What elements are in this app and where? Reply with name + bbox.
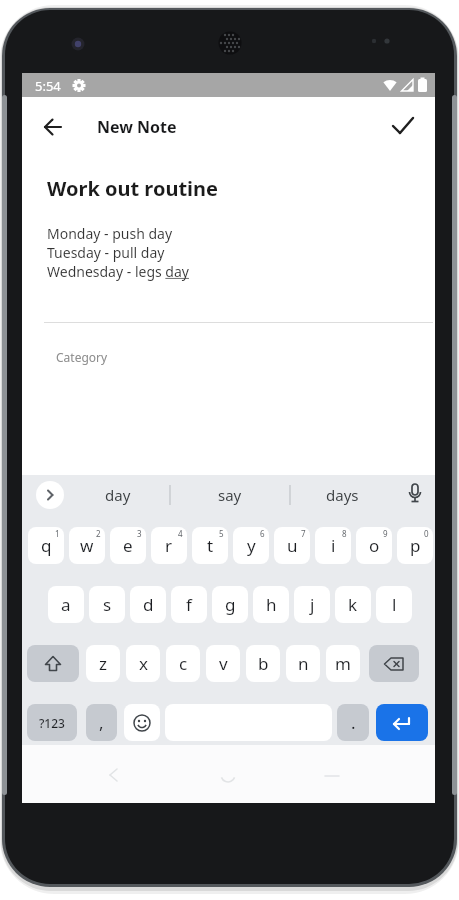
button[interactable]: a	[48, 586, 84, 623]
button[interactable]: c	[166, 645, 200, 682]
button[interactable]: j	[294, 586, 330, 623]
button[interactable]: m	[326, 645, 360, 682]
button[interactable]: q	[28, 527, 64, 564]
staticText: h	[266, 593, 277, 616]
button[interactable]: k	[335, 586, 371, 623]
button[interactable]	[407, 483, 423, 507]
staticText: e	[123, 534, 133, 557]
staticText: s	[103, 593, 112, 616]
button[interactable]: b	[246, 645, 280, 682]
staticText: w	[80, 534, 94, 557]
staticText: y	[247, 534, 256, 557]
staticText: Wednesday - legs day	[47, 262, 189, 281]
button[interactable]: o	[356, 527, 392, 564]
staticText: 2	[96, 528, 101, 539]
button[interactable]: u	[274, 527, 310, 564]
staticText: 5:54	[35, 77, 61, 95]
button[interactable]: w	[69, 527, 105, 564]
button[interactable]: x	[126, 645, 160, 682]
staticText: j	[310, 593, 315, 616]
button[interactable]: s	[89, 586, 125, 623]
button[interactable]: e	[110, 527, 146, 564]
button[interactable]: ,	[86, 704, 117, 741]
button[interactable]	[376, 704, 428, 741]
button[interactable]: f	[171, 586, 207, 623]
staticText: t	[207, 534, 214, 557]
button[interactable]: day	[66, 475, 170, 515]
staticText: say	[218, 485, 242, 505]
button[interactable]	[27, 645, 79, 682]
staticText: k	[348, 593, 358, 616]
button[interactable]: .	[337, 704, 369, 741]
staticText: c	[179, 652, 188, 675]
staticText: i	[331, 534, 336, 557]
staticText: days	[326, 485, 359, 505]
button[interactable]: l	[376, 586, 412, 623]
staticText: r	[165, 534, 173, 557]
staticText: Monday - push day	[47, 224, 173, 243]
staticText: b	[258, 652, 269, 675]
button[interactable]	[369, 645, 419, 682]
button[interactable]: z	[86, 645, 120, 682]
button[interactable]: n	[286, 645, 320, 682]
staticText: ?123	[39, 715, 65, 731]
staticText: a	[61, 593, 71, 616]
staticText: Category	[56, 349, 108, 365]
staticText: z	[99, 652, 107, 675]
staticText: o	[369, 534, 380, 557]
button[interactable]: y	[233, 527, 269, 564]
button[interactable]: g	[212, 586, 248, 623]
button[interactable]: ?123	[27, 704, 77, 741]
button[interactable]	[36, 481, 64, 509]
staticText: v	[219, 652, 228, 675]
button[interactable]: v	[206, 645, 240, 682]
staticText: d	[143, 593, 154, 616]
staticText: p	[410, 534, 421, 557]
button[interactable]: h	[253, 586, 289, 623]
button[interactable]: d	[130, 586, 166, 623]
staticText: f	[186, 593, 192, 616]
staticText: 0	[424, 528, 429, 539]
staticText: x	[139, 652, 148, 675]
button[interactable]	[391, 115, 415, 135]
staticText: ,	[99, 711, 104, 734]
staticText: m	[335, 652, 351, 675]
staticText: 8	[342, 528, 347, 539]
staticText: n	[298, 652, 309, 675]
button[interactable]: t	[192, 527, 228, 564]
staticText: .	[351, 711, 356, 734]
button[interactable]	[124, 704, 160, 741]
staticText: 7	[301, 528, 306, 539]
button[interactable]: r	[151, 527, 187, 564]
staticText: 4	[178, 528, 183, 539]
staticText: u	[287, 534, 298, 557]
staticText: Tuesday - pull day	[47, 243, 165, 262]
staticText: Work out routine	[47, 175, 218, 202]
button[interactable]: p	[397, 527, 433, 564]
staticText: 3	[137, 528, 142, 539]
staticText: day	[105, 485, 131, 505]
staticText: q	[41, 534, 52, 557]
button[interactable]: i	[315, 527, 351, 564]
button[interactable]: say	[170, 475, 290, 515]
staticText: New Note	[97, 116, 177, 138]
staticText: 6	[260, 528, 265, 539]
staticText: g	[225, 593, 236, 616]
staticText: 5	[219, 528, 224, 539]
staticText: 1	[55, 528, 60, 539]
staticText: 9	[383, 528, 388, 539]
staticText: l	[392, 593, 397, 616]
button[interactable]: days	[290, 475, 394, 515]
button[interactable]	[44, 118, 62, 136]
